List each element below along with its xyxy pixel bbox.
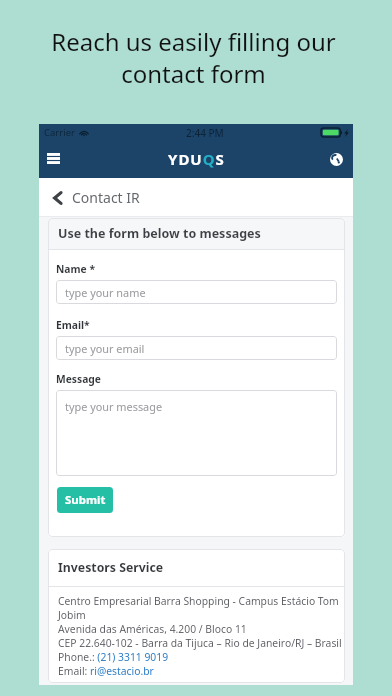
staticText: type your name xyxy=(65,285,146,300)
staticText: Carrier xyxy=(44,126,75,139)
staticText: Centro Empresarial Barra Shopping - Camp… xyxy=(58,594,345,622)
staticText: Name * xyxy=(56,262,95,276)
staticText: 2:44 PM xyxy=(186,126,224,140)
staticText: type your email xyxy=(65,341,145,356)
staticText: Use the form below to messages xyxy=(58,225,261,242)
button[interactable]: type your name xyxy=(56,280,337,304)
staticText: type your message xyxy=(65,399,163,414)
button[interactable]: type your message xyxy=(56,390,337,476)
staticText: Contact IR xyxy=(72,188,140,207)
button[interactable]: type your email xyxy=(56,336,337,360)
button[interactable]: Language xyxy=(324,147,348,171)
staticText: Email* xyxy=(56,318,90,332)
staticText: Phone.: (21) 3311 9019 xyxy=(58,650,169,664)
button[interactable]: Menu xyxy=(40,145,66,171)
staticText: Email: ri@estacio.br xyxy=(58,664,154,678)
staticText: Avenida das Américas, 4.200 / Bloco 11 xyxy=(58,622,247,636)
staticText: Investors Service xyxy=(58,559,164,576)
button[interactable]: Submit xyxy=(57,487,113,513)
staticText: YDUQS xyxy=(168,149,225,169)
staticText: CEP 22.640-102 - Barra da Tijuca – Rio d… xyxy=(58,636,342,650)
staticText: Submit xyxy=(65,492,106,508)
button[interactable]: Back xyxy=(46,187,68,209)
staticText: Reach us easily filling our contact form xyxy=(51,25,336,90)
staticText: Message xyxy=(56,372,102,386)
